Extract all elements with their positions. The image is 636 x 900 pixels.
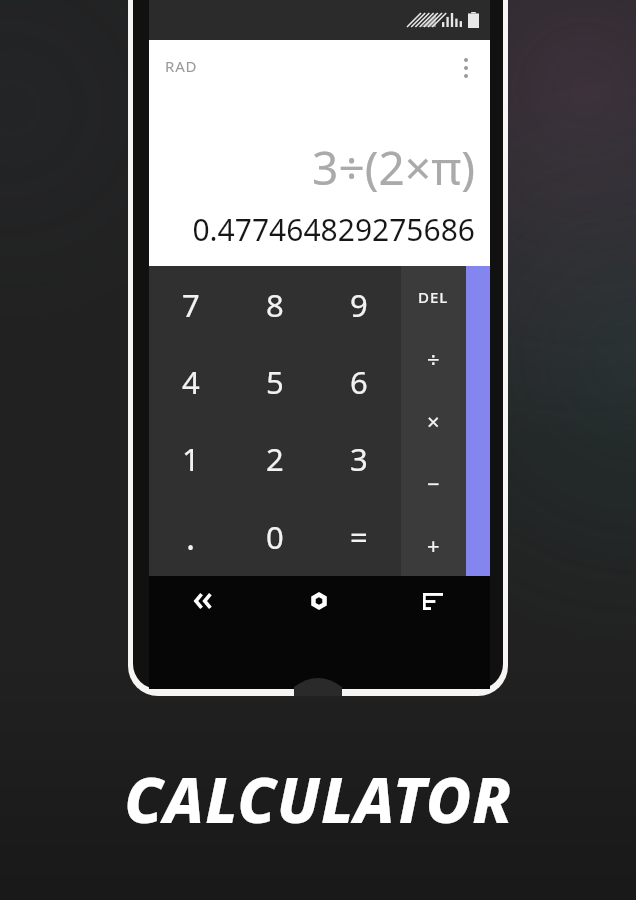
button[interactable]: 9 [317, 266, 401, 343]
button[interactable]: 0 [233, 498, 317, 576]
staticText: 8 [266, 284, 284, 326]
staticText: 9 [350, 284, 368, 326]
button[interactable]: 5 [233, 343, 317, 420]
staticText: RAD [165, 56, 198, 76]
staticText: − [427, 468, 440, 498]
button[interactable]: 1 [149, 420, 233, 498]
button[interactable]: ÷ [401, 328, 466, 390]
button[interactable]: 2 [233, 420, 317, 498]
staticText: × [427, 406, 440, 436]
button[interactable]: × [401, 390, 466, 452]
staticText: 6 [350, 361, 368, 403]
button[interactable]: Back [149, 576, 262, 626]
staticText: 2 [266, 438, 284, 480]
staticText: 1 [182, 438, 200, 480]
button[interactable]: + [401, 514, 466, 576]
staticText: + [427, 530, 440, 560]
staticText: 0.477464829275686 [192, 209, 475, 250]
staticText: 7 [182, 284, 200, 326]
staticText: DEL [418, 287, 449, 307]
button[interactable]: Home [262, 576, 376, 626]
button[interactable]: 3 [317, 420, 401, 498]
staticText: 0 [266, 516, 284, 558]
button[interactable]: = [317, 498, 401, 576]
staticText: 5 [266, 361, 284, 403]
button[interactable]: Recent apps [376, 576, 490, 626]
staticText: 3÷(2×π) [312, 136, 475, 199]
staticText: CALCULATOR [124, 757, 513, 841]
staticText: . [186, 514, 196, 560]
button[interactable]: 8 [233, 266, 317, 343]
button[interactable]: DEL [401, 266, 466, 328]
staticText: = [350, 516, 368, 558]
button[interactable]: More options [448, 50, 484, 86]
button[interactable]: − [401, 452, 466, 514]
staticText: 3 [350, 438, 368, 480]
staticText: 4 [182, 361, 200, 403]
button[interactable]: 7 [149, 266, 233, 343]
button[interactable]: . [149, 498, 233, 576]
button[interactable]: 4 [149, 343, 233, 420]
staticText: ÷ [427, 344, 440, 374]
button[interactable]: 6 [317, 343, 401, 420]
button[interactable]: RAD [149, 40, 210, 84]
